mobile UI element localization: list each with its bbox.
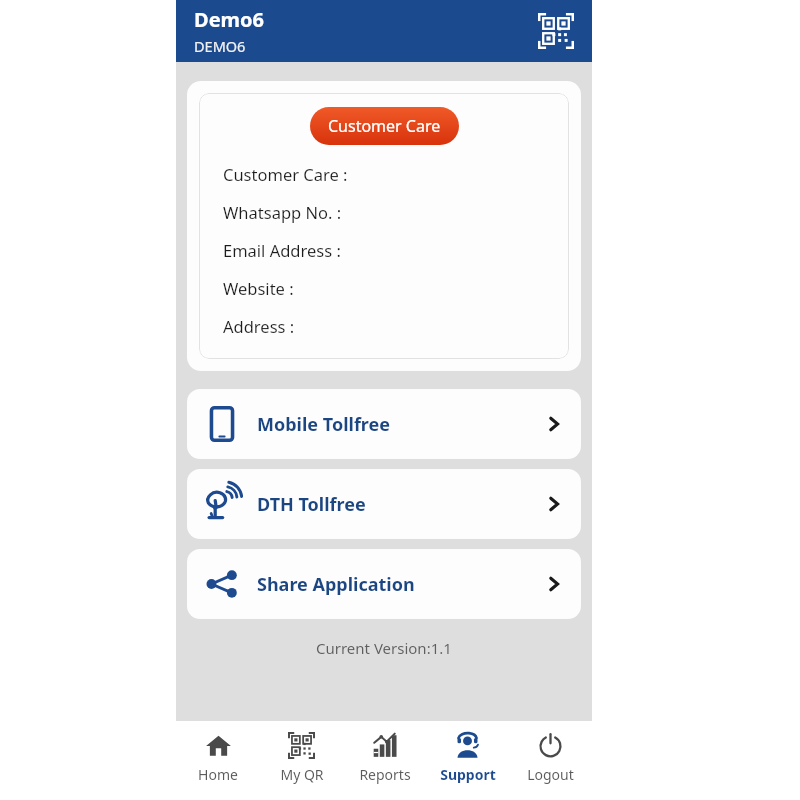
staticText: Current Version:1.1 xyxy=(316,638,452,658)
staticText: Logout xyxy=(527,765,574,784)
button[interactable]: My QR xyxy=(260,721,343,800)
button[interactable]: Scan QR code xyxy=(532,7,580,55)
staticText: Home xyxy=(198,765,238,784)
button[interactable]: Reports xyxy=(343,721,426,800)
staticText: Customer Care : xyxy=(223,163,348,185)
staticText: Support xyxy=(440,765,496,784)
staticText: Website : xyxy=(223,277,294,299)
staticText: Mobile Tollfree xyxy=(257,412,391,437)
staticText: Address : xyxy=(223,315,295,337)
staticText: DTH Tollfree xyxy=(257,492,366,517)
button[interactable]: Support xyxy=(426,721,509,800)
staticText: Customer Care xyxy=(328,115,441,137)
button[interactable]: Share Application xyxy=(187,549,581,619)
staticText: Share Application xyxy=(257,572,415,597)
button[interactable]: Home xyxy=(176,721,260,800)
staticText: Demo6 xyxy=(194,6,265,33)
staticText: Reports xyxy=(359,765,411,784)
staticText: Whatsapp No. : xyxy=(223,201,342,223)
staticText: DEMO6 xyxy=(194,36,246,56)
button[interactable]: Mobile Tollfree xyxy=(187,389,581,459)
staticText: My QR xyxy=(280,765,324,784)
button[interactable]: DTH Tollfree xyxy=(187,469,581,539)
staticText: Email Address : xyxy=(223,239,341,261)
button[interactable]: Customer Care xyxy=(310,107,459,145)
button[interactable]: Logout xyxy=(509,721,592,800)
